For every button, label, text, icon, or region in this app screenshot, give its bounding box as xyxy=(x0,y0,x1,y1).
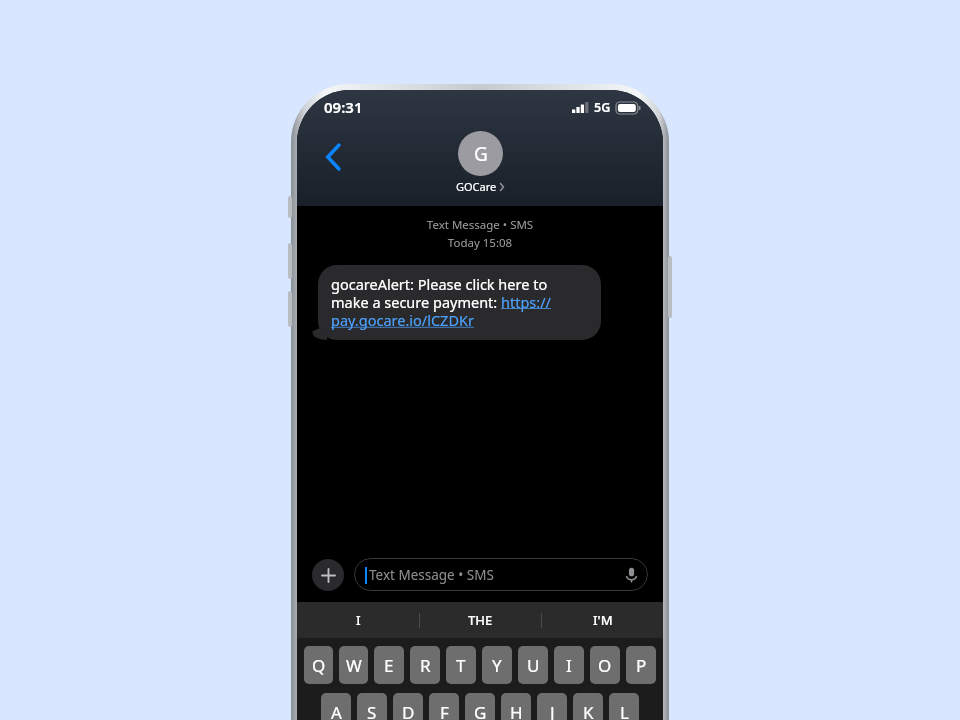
staticText: gocareAlert: Please click here to make a… xyxy=(331,274,588,330)
staticText: G xyxy=(474,701,487,720)
staticText: W xyxy=(346,654,362,677)
staticText: U xyxy=(527,654,540,677)
button[interactable]: R xyxy=(410,646,440,684)
staticText: I xyxy=(356,611,361,629)
staticText: T xyxy=(456,654,466,677)
staticText: GOCare xyxy=(456,179,497,194)
other: Dictate xyxy=(625,567,638,583)
button[interactable]: O xyxy=(590,646,620,684)
button[interactable]: J xyxy=(537,693,567,720)
button[interactable]: E xyxy=(374,646,404,684)
button[interactable]: Y xyxy=(482,646,512,684)
button[interactable]: W xyxy=(339,646,368,684)
button[interactable]: Text Message • SMS xyxy=(354,558,648,591)
button[interactable]: U xyxy=(518,646,548,684)
staticText: Q xyxy=(312,654,326,677)
button[interactable]: P xyxy=(626,646,656,684)
button[interactable]: I xyxy=(297,602,419,638)
staticText: H xyxy=(510,701,523,720)
staticText: E xyxy=(384,654,394,677)
button[interactable]: Back xyxy=(310,135,354,179)
staticText: G xyxy=(474,141,488,167)
staticText: R xyxy=(420,654,431,677)
button[interactable]: Q xyxy=(304,646,333,684)
button[interactable]: S xyxy=(357,693,387,720)
staticText: Text Message • SMS xyxy=(369,566,625,584)
button[interactable]: F xyxy=(429,693,459,720)
button[interactable]: L xyxy=(609,693,639,720)
staticText: O xyxy=(598,654,612,677)
button[interactable]: H xyxy=(501,693,531,720)
staticText: Today 15:08 xyxy=(297,235,663,251)
staticText: K xyxy=(583,701,594,720)
button[interactable]: K xyxy=(573,693,603,720)
staticText: D xyxy=(402,701,415,720)
button[interactable]: G xyxy=(456,131,504,194)
staticText: F xyxy=(440,701,449,720)
staticText: P xyxy=(636,654,647,677)
staticText: A xyxy=(331,701,342,720)
staticText: S xyxy=(367,701,377,720)
button[interactable]: gocareAlert: Please click here to make a… xyxy=(318,265,601,340)
button[interactable]: A xyxy=(321,693,351,720)
button[interactable]: Add attachment xyxy=(312,559,344,591)
staticText: L xyxy=(620,701,629,720)
button[interactable]: G xyxy=(465,693,495,720)
button[interactable]: T xyxy=(446,646,476,684)
staticText: 09:31 xyxy=(324,97,363,117)
staticText: Text Message • SMS xyxy=(297,217,663,233)
staticText: Y xyxy=(492,654,502,677)
staticText: I xyxy=(566,654,572,677)
staticText: J xyxy=(550,701,555,720)
staticText: 5G xyxy=(594,99,611,116)
staticText: I'M xyxy=(593,611,613,629)
button[interactable]: THE xyxy=(420,602,541,638)
button[interactable]: I xyxy=(554,646,584,684)
button[interactable]: D xyxy=(393,693,423,720)
staticText: THE xyxy=(468,611,493,629)
button[interactable]: I'M xyxy=(542,602,663,638)
